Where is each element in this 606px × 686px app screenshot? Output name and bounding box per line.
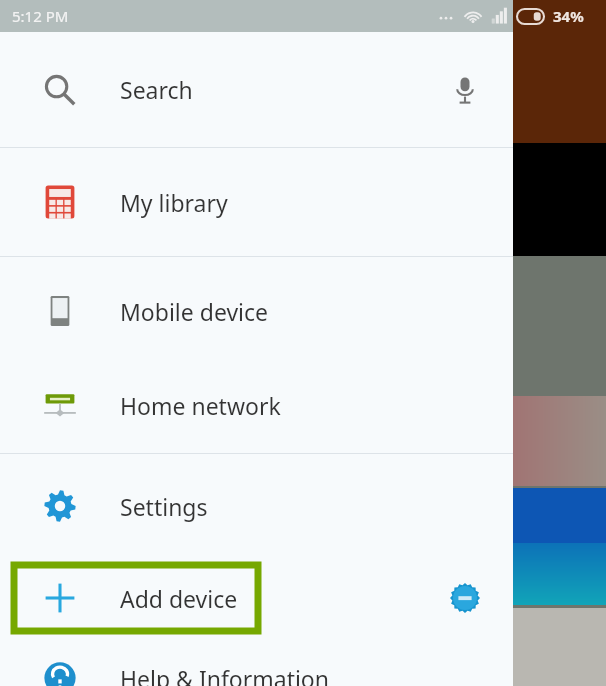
button[interactable]: Search — [0, 32, 513, 147]
button[interactable]: Home network — [0, 365, 513, 445]
button[interactable]: Mobile device — [0, 257, 513, 365]
staticText: Search — [120, 74, 193, 105]
staticText: Settings — [120, 491, 208, 522]
button[interactable]: Settings — [0, 454, 513, 558]
staticText: Mobile device — [120, 296, 269, 327]
staticText: Add device — [120, 583, 238, 614]
button[interactable]: Help & Information — [0, 638, 513, 686]
staticText: Home network — [120, 390, 281, 421]
button[interactable]: Voice search — [441, 66, 489, 114]
staticText: 34% — [553, 6, 584, 26]
button[interactable]: My library — [0, 148, 513, 256]
staticText: My library — [120, 187, 228, 218]
staticText: Help & Information — [120, 663, 330, 686]
staticText: 5:12 PM — [12, 6, 69, 26]
button[interactable]: Add device — [0, 558, 513, 638]
